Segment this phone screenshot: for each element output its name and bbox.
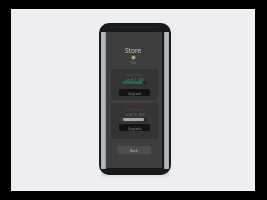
staticText: Back (130, 148, 138, 153)
staticText: Call Diverter (124, 107, 146, 112)
staticText: Upgrade (128, 91, 142, 95)
other: Coins (131, 55, 136, 60)
button[interactable]: Upgrade (119, 124, 150, 131)
staticText: Store (125, 46, 142, 55)
staticText: Available (127, 72, 143, 77)
button[interactable]: Upgrade (119, 89, 150, 96)
staticText: Level 10 800 (125, 113, 145, 117)
staticText: 500 (130, 60, 136, 64)
staticText: Level 1 200 (126, 78, 144, 82)
staticText: Upgrade (128, 126, 142, 130)
button[interactable]: Back (117, 146, 151, 154)
